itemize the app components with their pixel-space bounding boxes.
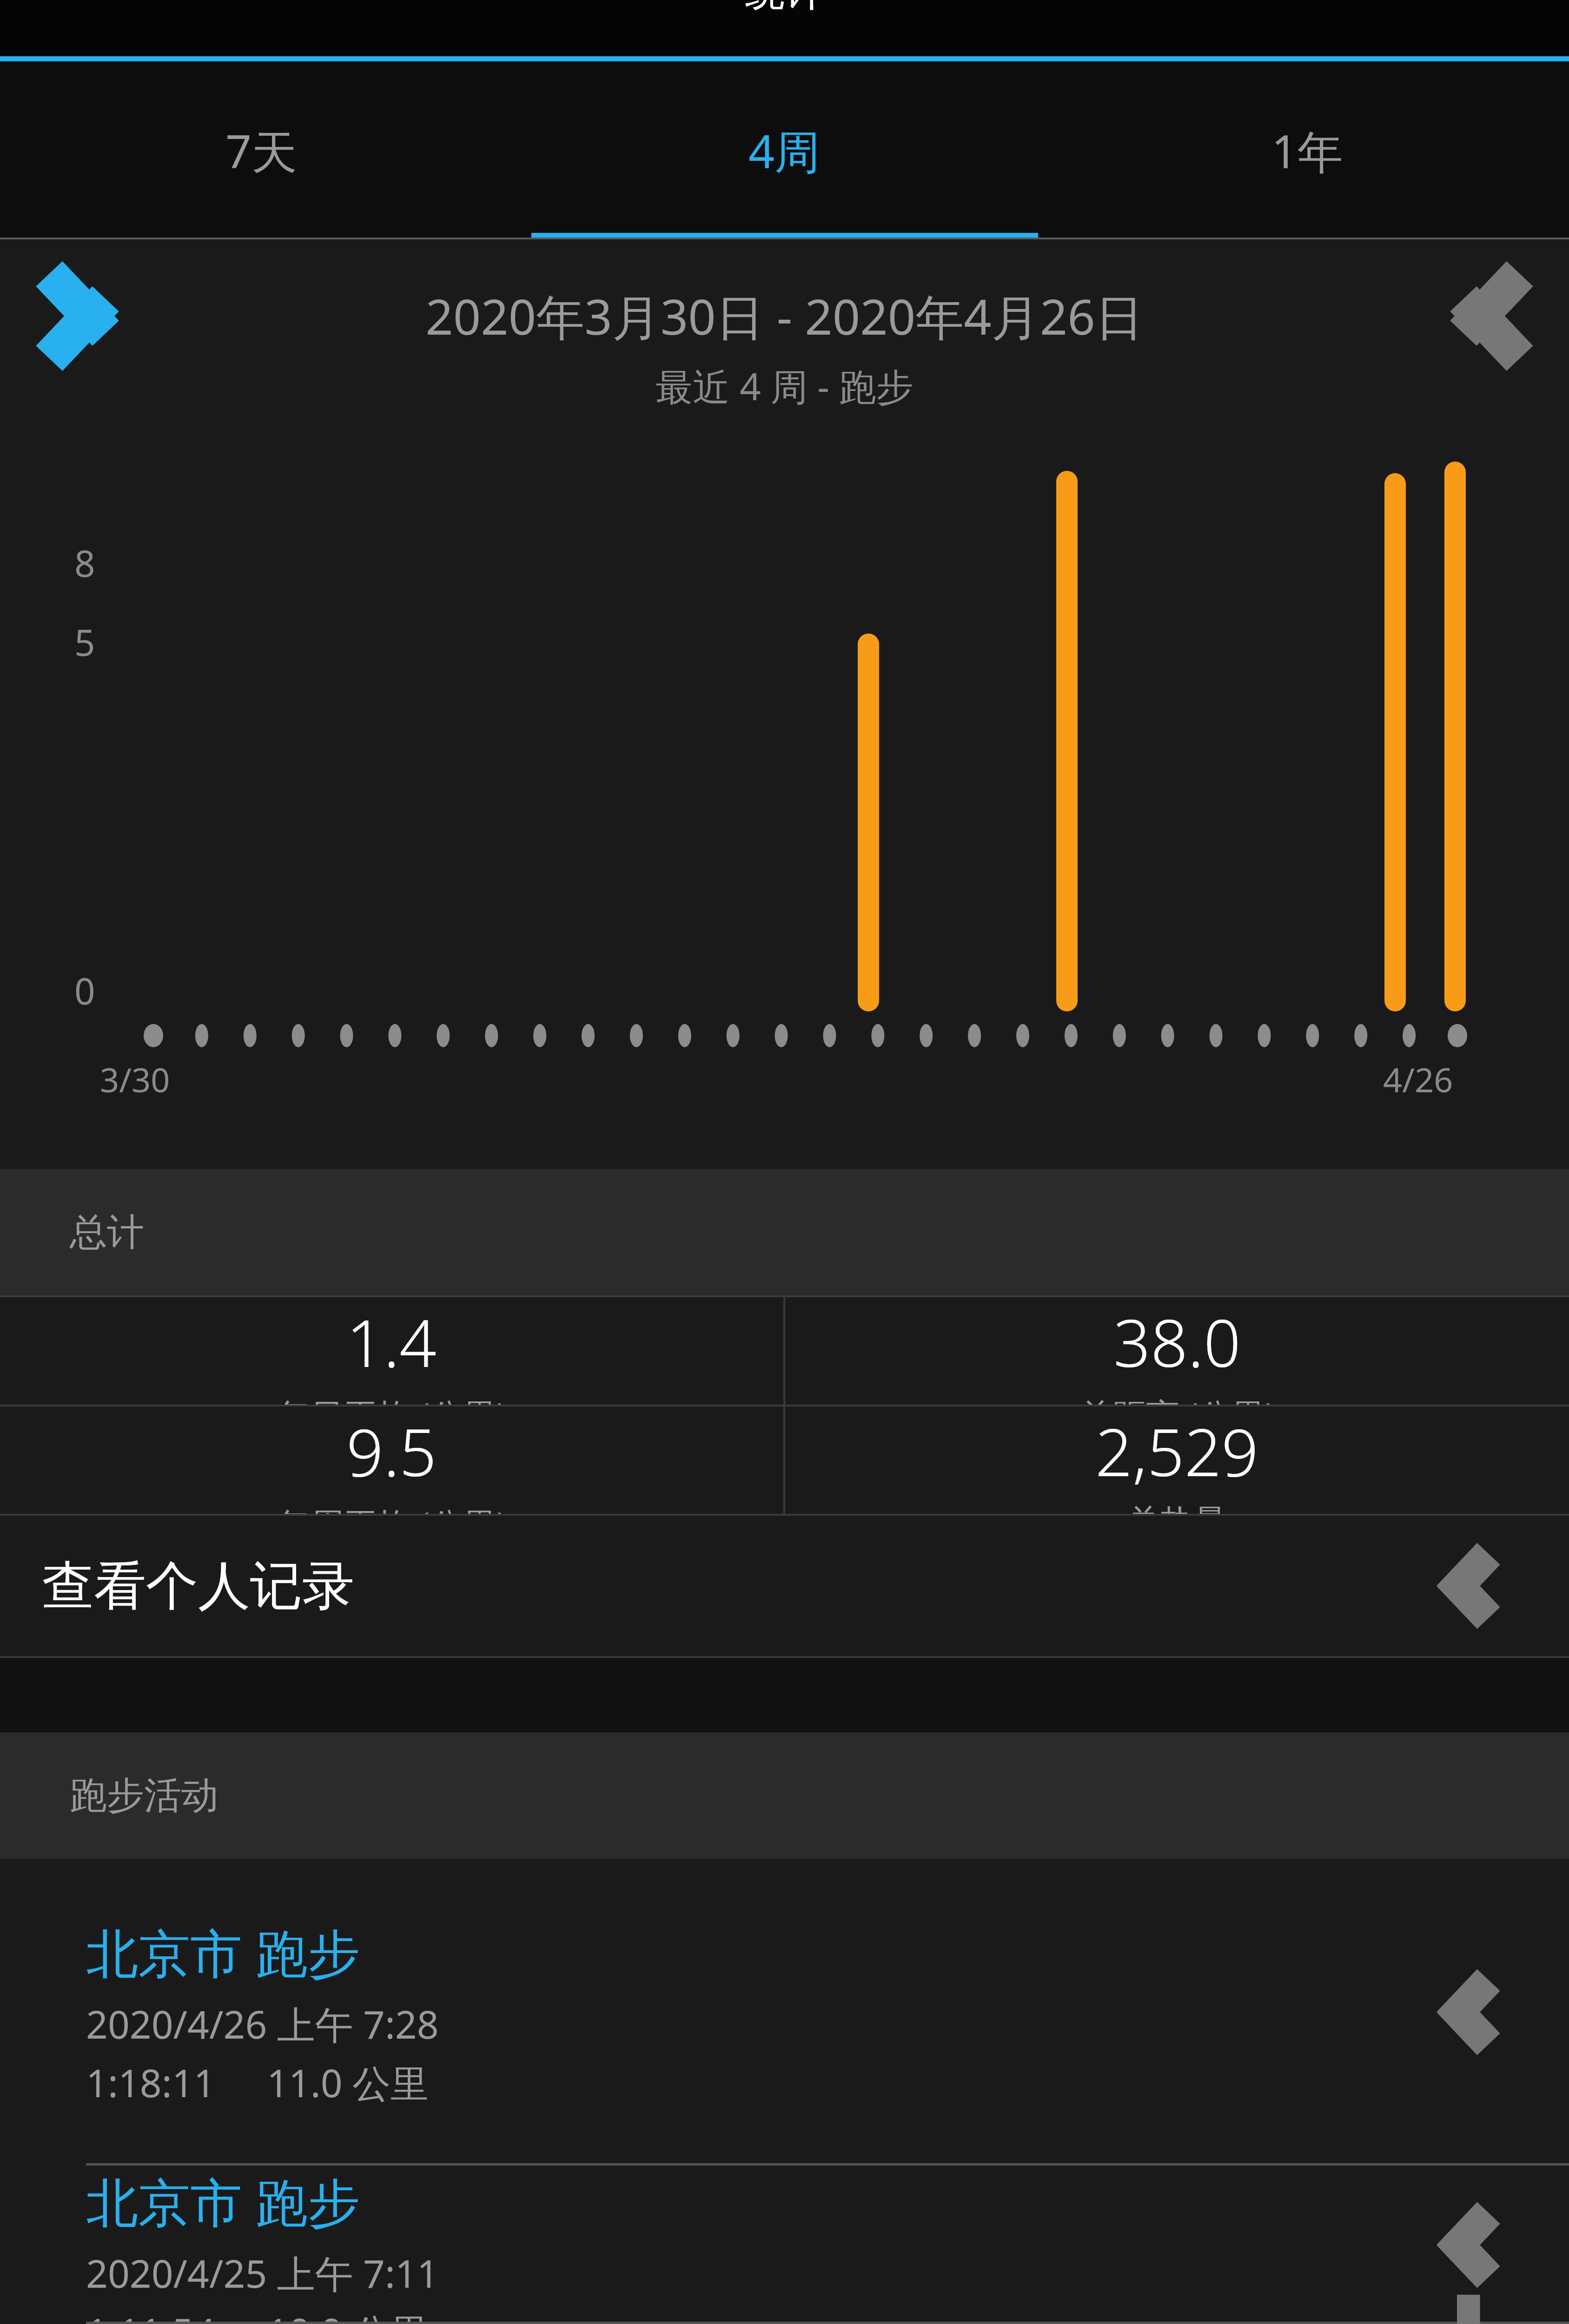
button[interactable]: 4周 (523, 61, 1046, 239)
button[interactable]: 北京市 跑步 (0, 2166, 1569, 2324)
staticText: 跑步活动 (70, 1772, 218, 1819)
button[interactable]: 9.5 (0, 1406, 783, 1514)
staticText: 4周 (748, 119, 821, 182)
staticText: 1:18:11 (86, 2056, 216, 2108)
staticText: 38.0 (1113, 1297, 1241, 1386)
button[interactable]: 2,529 (785, 1406, 1569, 1514)
staticText: 3/30 (100, 1056, 170, 1102)
staticText: 2020/4/26 上午 7:28 (86, 1998, 439, 2050)
staticText: 2,529 (1095, 1406, 1259, 1495)
staticText: 1年 (1271, 119, 1344, 182)
staticText: 总计 (70, 1209, 144, 1256)
staticText: 4/26 (1383, 1056, 1453, 1102)
staticText: 0 (74, 966, 95, 1015)
staticText: 10.0 公里 (267, 2305, 429, 2324)
button[interactable]: 查看个人记录 (0, 1516, 1569, 1656)
staticText: 7天 (225, 119, 298, 182)
button[interactable]: 北京市 跑步 (0, 1859, 1569, 2166)
staticText: 最近 4 周 - 跑步 (0, 360, 1569, 411)
button[interactable]: 7天 (0, 61, 523, 239)
staticText: 总距离 (公里) (1079, 1392, 1275, 1405)
staticText: 北京市 跑步 (86, 1916, 360, 1987)
button[interactable]: 38.0 (785, 1297, 1569, 1405)
staticText: 2020年3月30日 - 2020年4月26日 (153, 283, 1416, 349)
staticText: 1.4 (346, 1297, 437, 1386)
staticText: 统计 (745, 0, 825, 17)
staticText: 9.5 (346, 1406, 437, 1495)
staticText: 8 (74, 538, 95, 588)
staticText: 查看个人记录 (42, 1553, 354, 1619)
staticText: 北京市 跑步 (86, 2166, 360, 2237)
staticText: 11.0 公里 (267, 2056, 429, 2108)
button[interactable]: 1年 (1046, 61, 1569, 239)
button[interactable]: 下一个时间段 (1416, 272, 1569, 360)
staticText: 每周平均 (公里) (277, 1501, 507, 1514)
staticText: 5 (74, 617, 95, 667)
staticText: 1:11:54 (86, 2305, 216, 2324)
button[interactable]: 上一个时间段 (0, 272, 153, 360)
staticText: 每日平均 (公里) (277, 1392, 507, 1405)
button[interactable]: 1.4 (0, 1297, 783, 1405)
staticText: 2020/4/25 上午 7:11 (86, 2247, 439, 2299)
staticText: 总热量 (1127, 1501, 1227, 1514)
